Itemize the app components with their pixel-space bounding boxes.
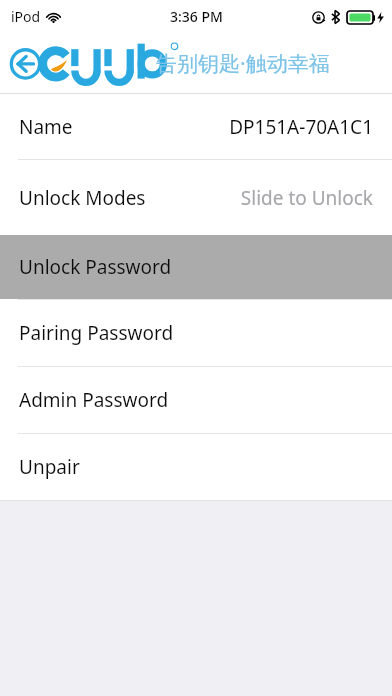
staticText: iPod	[11, 7, 41, 26]
staticText: Unlock Modes	[19, 185, 146, 211]
staticText: Name	[19, 114, 73, 140]
button[interactable]: Unlock Password	[0, 235, 392, 299]
staticText: Unpair	[19, 454, 80, 480]
staticText: 3:36 PM	[170, 7, 223, 26]
button[interactable]: Admin Password	[0, 367, 392, 433]
button[interactable]: Pairing Password	[0, 300, 392, 366]
button[interactable]: Back	[10, 41, 144, 85]
staticText: Slide to Unlock	[240, 185, 373, 211]
staticText: 告别钥匙·触动幸福	[156, 49, 330, 78]
staticText: Admin Password	[19, 387, 169, 413]
button[interactable]: Unlock Modes	[0, 160, 392, 235]
staticText: Pairing Password	[19, 320, 174, 346]
staticText: DP151A-70A1C1	[229, 114, 373, 140]
staticText: Unlock Password	[19, 254, 172, 280]
button[interactable]: Name	[0, 94, 392, 159]
button[interactable]: Unpair	[0, 434, 392, 500]
